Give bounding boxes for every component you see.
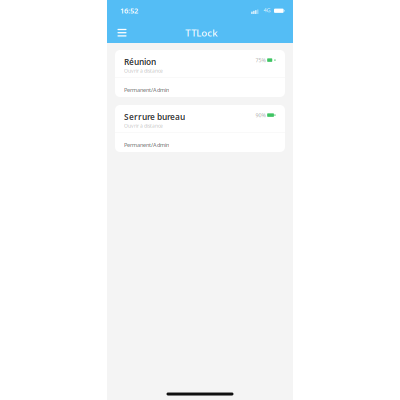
button[interactable]: Serrure bureau [115,105,285,152]
staticText: Ouvrir à distance [124,67,163,74]
staticText: Réunion [124,56,156,67]
staticText: TTLock [185,26,217,39]
staticText: 4G [264,6,271,14]
button[interactable]: Réunion [115,50,285,97]
staticText: Serrure bureau [124,111,185,122]
button[interactable]: Menu [117,21,139,44]
staticText: Permanent/Admin [124,141,169,148]
staticText: Permanent/Admin [124,86,169,93]
staticText: Ouvrir à distance [124,122,163,129]
staticText: 16:52 [120,5,138,16]
staticText: 75% [256,56,266,64]
staticText: 90% [256,111,266,119]
